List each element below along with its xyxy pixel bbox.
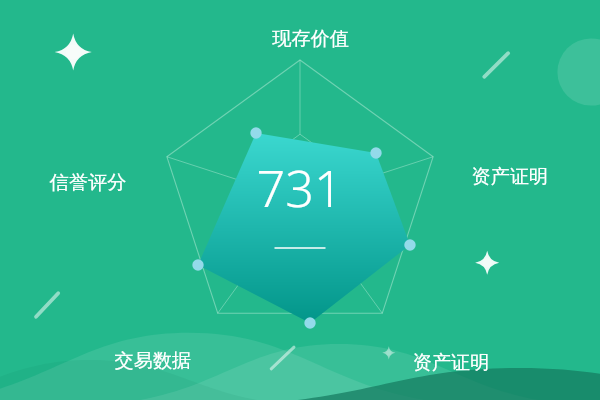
button[interactable]: Credit score radar chart, score 731 [0,0,600,400]
